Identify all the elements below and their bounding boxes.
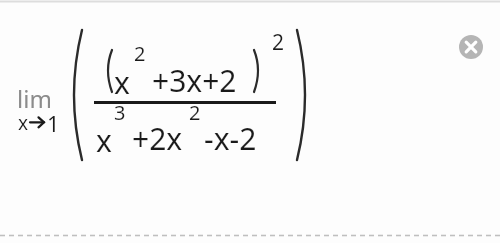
staticText: x <box>96 120 112 161</box>
staticText: x <box>18 110 29 136</box>
staticText: -x-2 <box>204 118 257 159</box>
staticText: x <box>114 62 130 103</box>
staticText: 2 <box>189 99 201 126</box>
button[interactable]: Close <box>459 35 483 59</box>
staticText: 3 <box>114 99 126 126</box>
staticText: +2x <box>132 118 183 159</box>
staticText: +3x+2 <box>152 60 237 101</box>
staticText: 1 <box>47 108 60 138</box>
staticText: 2 <box>134 40 146 67</box>
staticText: 2 <box>272 28 285 57</box>
staticText: lim <box>17 82 52 115</box>
